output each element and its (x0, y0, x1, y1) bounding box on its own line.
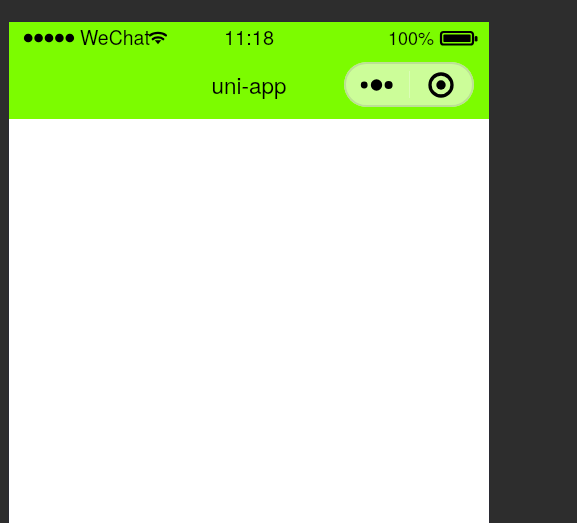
button[interactable]: Close mini program (410, 62, 474, 107)
button[interactable]: More options (344, 62, 409, 107)
staticText: WeChat (80, 23, 150, 51)
staticText: 11:18 (9, 22, 489, 51)
staticText: uni-app (9, 68, 489, 100)
staticText: 100% (388, 24, 435, 50)
